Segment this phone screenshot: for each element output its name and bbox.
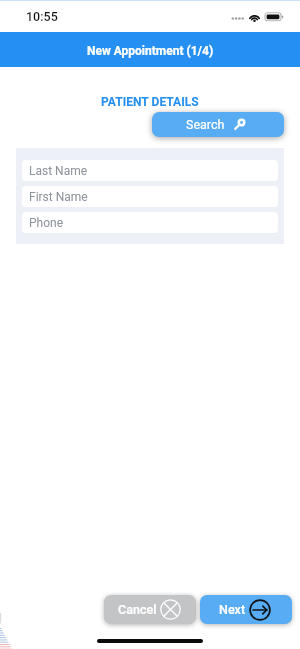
button[interactable]: Search (152, 112, 284, 137)
staticText: Cancel (118, 602, 157, 617)
button[interactable]: First Name (22, 186, 278, 207)
staticText: Phone (29, 216, 64, 230)
staticText: New Appointment (1/4) (87, 44, 214, 58)
button[interactable]: Last Name (22, 160, 278, 181)
staticText: Next (219, 602, 246, 617)
button[interactable]: Cancel (104, 595, 196, 624)
staticText: Last Name (29, 164, 88, 178)
staticText: First Name (29, 190, 88, 204)
staticText: PATIENT DETAILS (101, 95, 199, 109)
button[interactable]: Next (200, 595, 292, 624)
button[interactable]: New Appointment (1/4) (0, 32, 300, 67)
button[interactable]: Phone (22, 212, 278, 233)
staticText: Search (186, 117, 225, 132)
staticText: 10:55 (26, 9, 58, 24)
